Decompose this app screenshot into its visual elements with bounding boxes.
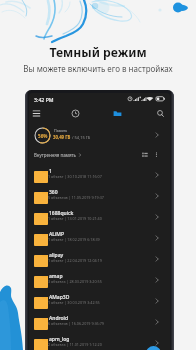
staticText: ALiMP (49, 231, 64, 238)
staticText: 1688quick (49, 210, 74, 217)
staticText: Android (49, 315, 69, 322)
staticText: / 54,15 ГБ (71, 135, 91, 140)
staticText: 56% (38, 133, 48, 139)
button[interactable]: 1 (29, 164, 170, 185)
button[interactable]: Внутренняя память (34, 152, 82, 158)
staticText: 1 объект | 18.02.2019 6:18:39 (48, 237, 100, 242)
button[interactable]: amap (29, 269, 170, 290)
staticText: 360 (49, 189, 58, 196)
staticText: 1 объект | 30.10.2018 11:16:07 (48, 174, 102, 179)
staticText: 1 (49, 168, 52, 175)
staticText: Внутренняя память (34, 152, 76, 158)
button[interactable]: Files (111, 107, 124, 120)
staticText: alipay (49, 252, 64, 259)
staticText: 6 объектов | 16.06.2019 9:36:79 (48, 321, 104, 326)
button[interactable]: alipay (29, 248, 170, 269)
button[interactable]: Android (29, 311, 170, 332)
button[interactable]: apm_log (29, 332, 170, 350)
button[interactable]: 360 (29, 185, 170, 206)
button[interactable]: 1688quick (29, 206, 170, 227)
staticText: apm_log (49, 336, 70, 343)
button[interactable]: Search (154, 107, 167, 120)
staticText: 30,49 ГБ (53, 134, 71, 140)
button[interactable]: Recent (69, 107, 82, 120)
staticText: Вы можете включить его в настройках (23, 63, 173, 74)
staticText: amap (49, 273, 63, 280)
staticText: AMap3D (49, 294, 70, 301)
button[interactable]: ALiMP (29, 227, 170, 248)
staticText: 3 объекта | 28.03.2019 3:20:55 (48, 279, 102, 284)
staticText: 1 объект | 22.04.2019 12:04:19 (48, 258, 102, 263)
button[interactable]: More options (152, 150, 161, 159)
staticText: Темный режим (49, 44, 147, 61)
staticText: Память (54, 128, 68, 133)
button[interactable]: AMap3D (29, 290, 170, 311)
button[interactable]: Add (146, 346, 161, 350)
staticText: 2 объекта | 11.01.2019 1:12:20 (48, 342, 102, 347)
staticText: 5 объектов | 11.05.2019 9:19:37 (48, 195, 104, 200)
staticText: 1 объект | 13.01.2019 10:21:40 (48, 216, 102, 221)
staticText: 3:42 PM (34, 96, 54, 103)
button[interactable]: Menu (30, 107, 43, 120)
staticText: 1 объект | 30.03.2019 3:42:55 (48, 300, 100, 305)
button[interactable]: 56% (29, 122, 170, 148)
button[interactable]: View mode (140, 150, 149, 159)
